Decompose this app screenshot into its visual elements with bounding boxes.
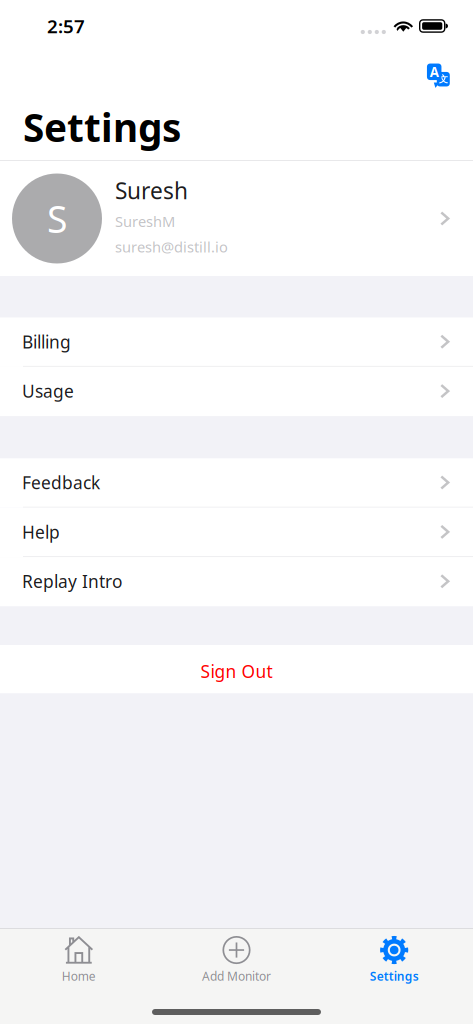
staticText: SureshM (115, 212, 175, 231)
staticText: Billing (22, 330, 71, 353)
button[interactable]: Translate (427, 63, 450, 86)
staticText: Settings (23, 101, 181, 153)
staticText: Usage (22, 380, 74, 403)
button[interactable]: Billing (0, 317, 473, 367)
staticText: Help (22, 520, 60, 543)
staticText: Replay Intro (22, 570, 122, 593)
staticText: 文 (439, 73, 448, 85)
staticText: S (47, 194, 67, 243)
button[interactable]: Sign Out (0, 645, 473, 693)
button[interactable]: Replay Intro (0, 557, 473, 606)
button[interactable]: Help (0, 508, 473, 557)
staticText: Home (62, 968, 96, 984)
staticText: A (430, 63, 439, 81)
button[interactable]: Feedback (0, 458, 473, 508)
staticText: 2:57 (47, 14, 85, 38)
button[interactable]: Add Monitor (158, 931, 315, 989)
staticText: Add Monitor (202, 968, 271, 984)
button[interactable]: Settings (315, 931, 473, 989)
staticText: Sign Out (200, 660, 272, 683)
button[interactable]: Home (0, 931, 158, 989)
button[interactable]: Usage (0, 367, 473, 416)
staticText: Settings (370, 968, 419, 984)
button[interactable]: S (0, 161, 473, 276)
staticText: Suresh (115, 175, 188, 206)
staticText: suresh@distill.io (115, 237, 228, 257)
staticText: Feedback (22, 471, 100, 494)
